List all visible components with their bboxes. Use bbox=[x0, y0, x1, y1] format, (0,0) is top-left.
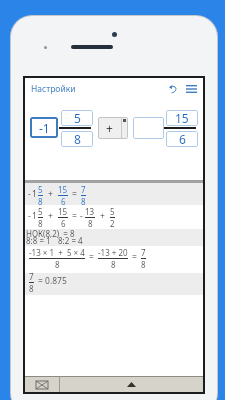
staticText: 8:8 = 1 bbox=[26, 235, 51, 246]
staticText: - bbox=[28, 210, 31, 222]
button[interactable]: Mail bbox=[25, 377, 59, 392]
staticText: - bbox=[80, 210, 83, 222]
staticText: 15 bbox=[58, 206, 68, 217]
staticText: + bbox=[106, 120, 113, 136]
staticText: 8 bbox=[29, 283, 34, 294]
staticText: НОК(8,2) = 8 bbox=[26, 228, 75, 239]
staticText: 2 bbox=[110, 218, 115, 229]
staticText: 15 bbox=[175, 110, 189, 126]
staticText: 8:2 = 4 bbox=[58, 235, 83, 246]
button[interactable]: 8 bbox=[61, 131, 93, 147]
staticText: 8 bbox=[141, 259, 146, 270]
staticText: 8 bbox=[111, 259, 116, 270]
staticText: 15 bbox=[58, 184, 68, 195]
staticText: = bbox=[72, 210, 77, 222]
staticText: 8 bbox=[38, 196, 43, 207]
button[interactable]: Настройки bbox=[25, 81, 80, 97]
staticText: 5 bbox=[110, 206, 115, 217]
staticText: 1 bbox=[32, 188, 37, 200]
staticText: 6 bbox=[61, 196, 66, 207]
staticText: + bbox=[48, 188, 53, 200]
staticText: + bbox=[100, 210, 105, 222]
staticText: -13 × 1 + 5 × 4 bbox=[29, 247, 85, 258]
button[interactable]: Menu bbox=[182, 79, 201, 98]
staticText: 7 bbox=[141, 247, 146, 258]
staticText: 5 bbox=[38, 206, 43, 217]
button[interactable]: Expand bbox=[60, 377, 203, 392]
staticText: 8 bbox=[81, 196, 86, 207]
staticText: 6 bbox=[179, 131, 186, 147]
staticText: 6 bbox=[61, 218, 66, 229]
button[interactable] bbox=[133, 117, 164, 139]
staticText: 8 bbox=[74, 131, 81, 147]
staticText: -13 + 20 bbox=[98, 247, 128, 258]
staticText: 13 bbox=[85, 206, 95, 217]
staticText: = 0.875 bbox=[38, 275, 67, 287]
staticText: = bbox=[72, 188, 77, 200]
staticText: 7 bbox=[81, 184, 86, 195]
button[interactable]: 15 bbox=[166, 110, 198, 126]
button[interactable]: Undo bbox=[165, 80, 182, 97]
button[interactable]: 5 bbox=[61, 110, 93, 126]
staticText: 1 bbox=[32, 210, 37, 222]
staticText: 5 bbox=[38, 184, 43, 195]
staticText: 5 bbox=[74, 110, 81, 126]
staticText: Настройки bbox=[31, 83, 76, 95]
staticText: - bbox=[28, 188, 31, 200]
staticText: 8 bbox=[55, 259, 60, 270]
staticText: -1 bbox=[39, 120, 50, 136]
staticText: = bbox=[89, 251, 94, 263]
staticText: = bbox=[132, 251, 137, 263]
staticText: 7 bbox=[29, 271, 34, 282]
button[interactable]: 6 bbox=[166, 131, 198, 147]
staticText: 8 bbox=[88, 218, 93, 229]
staticText: + bbox=[48, 210, 53, 222]
button[interactable]: Operator plus bbox=[98, 117, 128, 139]
staticText: 8 bbox=[38, 218, 43, 229]
button[interactable]: -1 bbox=[30, 117, 58, 138]
